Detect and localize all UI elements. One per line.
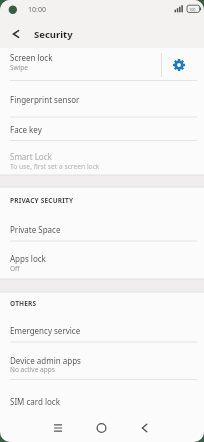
staticText: Smart Lock [10,151,52,162]
staticText: Swipe [10,63,29,72]
staticText: To use, first set a screen lock [10,162,100,171]
button[interactable] [131,416,159,442]
button[interactable] [0,212,204,241]
staticText: Face key [10,124,42,135]
staticText: Emergency service [10,325,81,336]
button[interactable] [0,380,204,416]
button[interactable] [0,117,204,141]
button[interactable] [0,81,204,118]
button[interactable] [0,241,204,279]
staticText: Private Space [10,224,61,235]
button[interactable] [44,416,72,442]
staticText: PRIVACY SECURITY [10,196,74,205]
staticText: OTHERS [10,299,37,308]
staticText: SIM card lock [10,396,60,407]
staticText: Device admin apps [10,355,81,366]
staticText: Off [10,264,20,273]
button[interactable] [0,48,162,81]
button[interactable] [88,416,116,442]
staticText: Apps lock [10,253,46,264]
staticText: No active apps [10,365,55,374]
button[interactable] [162,48,204,81]
staticText: 10:00 [28,5,46,15]
button[interactable] [0,342,204,380]
staticText: Screen lock [10,52,53,63]
button[interactable] [0,141,204,176]
button[interactable] [6,26,26,42]
button[interactable] [0,313,204,342]
staticText: Fingerprint sensor [10,94,80,105]
staticText: Security [34,28,73,41]
staticText: 100 [189,7,196,12]
